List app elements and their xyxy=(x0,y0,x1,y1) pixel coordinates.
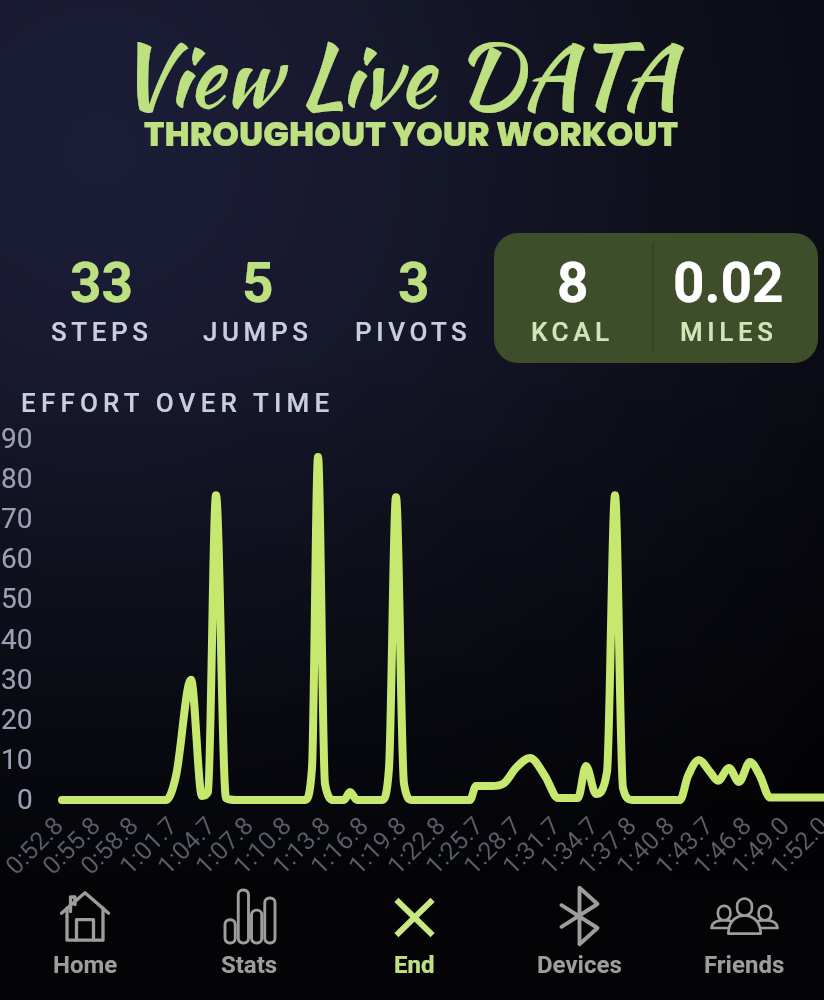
staticText: 5 xyxy=(242,251,274,315)
staticText: 1:49.0 xyxy=(726,811,795,880)
button[interactable] xyxy=(494,233,818,363)
button[interactable]: 33 xyxy=(51,251,153,347)
staticText: 80 xyxy=(1,462,33,495)
staticText: 1:34.7 xyxy=(535,811,604,880)
staticText: Devices xyxy=(537,951,622,979)
button[interactable]: Devices xyxy=(497,878,662,1000)
staticText: 1:19.8 xyxy=(343,811,412,880)
button[interactable]: 3 xyxy=(355,251,472,347)
staticText: 1:16.8 xyxy=(305,811,374,880)
staticText: End xyxy=(394,951,435,979)
staticText: 10 xyxy=(1,743,33,776)
button[interactable]: 0.02 xyxy=(673,251,784,347)
staticText: 0:55.8 xyxy=(37,811,106,880)
button[interactable]: 8 xyxy=(531,251,614,347)
staticText: STEPS xyxy=(51,317,153,347)
staticText: 3 xyxy=(398,251,430,315)
staticText: 50 xyxy=(1,582,33,615)
staticText: 1:13.8 xyxy=(267,811,336,880)
staticText: 1:04.7 xyxy=(152,811,221,880)
staticText: 1:40.8 xyxy=(611,811,680,880)
staticText: KCAL xyxy=(531,317,614,347)
staticText: 0.02 xyxy=(673,251,784,315)
staticText: THROUGHOUT YOUR WORKOUT xyxy=(144,110,679,158)
button[interactable]: Stats xyxy=(167,878,332,1000)
staticText: 90 xyxy=(1,422,33,455)
button[interactable]: 5 xyxy=(203,251,313,347)
staticText: 1:28.7 xyxy=(458,811,527,880)
staticText: Home xyxy=(53,951,118,979)
staticText: View Live DATA xyxy=(116,12,678,138)
staticText: 0:52.8 xyxy=(0,811,69,880)
staticText: Friends xyxy=(704,951,785,979)
staticText: EFFORT OVER TIME xyxy=(21,388,335,418)
staticText: 0:58.8 xyxy=(75,811,144,880)
staticText: 0 xyxy=(17,783,33,816)
staticText: 1:01.7 xyxy=(114,811,183,880)
button[interactable]: Friends xyxy=(662,878,824,1000)
staticText: 1:46.8 xyxy=(688,811,757,880)
staticText: 33 xyxy=(70,251,134,315)
staticText: PIVOTS xyxy=(355,317,472,347)
staticText: 1:25.7 xyxy=(420,811,489,880)
staticText: 8 xyxy=(557,251,589,315)
button[interactable]: Home xyxy=(3,878,167,1000)
staticText: 30 xyxy=(1,663,33,696)
staticText: 20 xyxy=(1,703,33,736)
staticText: 1:31.7 xyxy=(497,811,566,880)
staticText: 70 xyxy=(1,502,33,535)
staticText: MILES xyxy=(680,317,778,347)
staticText: 1:10.8 xyxy=(228,811,297,880)
staticText: 1:37.8 xyxy=(573,811,642,880)
staticText: 1:07.8 xyxy=(190,811,259,880)
staticText: 60 xyxy=(1,542,33,575)
staticText: 1:22.8 xyxy=(382,811,451,880)
staticText: 40 xyxy=(1,623,33,656)
button[interactable]: End xyxy=(332,878,497,1000)
staticText: 1:52.0 xyxy=(765,811,824,880)
staticText: Stats xyxy=(221,951,278,979)
staticText: 1:43.7 xyxy=(650,811,719,880)
staticText: JUMPS xyxy=(203,317,313,347)
